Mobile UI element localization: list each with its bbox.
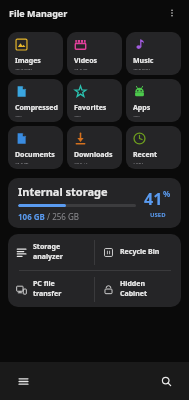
staticText: Recycle Bin [120, 247, 160, 257]
staticText: Downloads [74, 150, 113, 160]
button[interactable]: Hidden [95, 271, 181, 307]
staticText: analyzer [33, 252, 63, 262]
button[interactable]: Downloads [67, 126, 122, 169]
button[interactable]: PC file [8, 271, 94, 307]
staticText: (45) [133, 161, 144, 164]
staticText: (113) [74, 67, 88, 70]
staticText: (5327) [15, 67, 33, 70]
button[interactable]: Storage [8, 234, 94, 270]
staticText: Storage [33, 242, 61, 252]
button[interactable]: Recycle Bin [95, 234, 181, 270]
button[interactable]: Search [155, 370, 177, 392]
staticText: transfer [33, 289, 62, 299]
staticText: Videos [74, 56, 98, 66]
staticText: 106 GB [18, 211, 45, 222]
staticText: / 256 GB [45, 211, 79, 222]
button[interactable]: Internal storage [8, 178, 181, 228]
staticText: Internal storage [18, 184, 108, 199]
staticText: Documents [15, 150, 55, 160]
button[interactable]: More options [164, 5, 180, 21]
staticText: (0) [15, 114, 23, 117]
staticText: Apps [133, 103, 151, 113]
staticText: Hidden [120, 279, 146, 289]
staticText: Cabinet [120, 289, 147, 299]
button[interactable]: Images [8, 32, 63, 75]
staticText: Music [133, 56, 154, 66]
staticText: (5590) [133, 67, 151, 70]
staticText: PC file [33, 279, 55, 289]
staticText: (117) [15, 161, 29, 164]
staticText: File Manager [9, 7, 68, 19]
button[interactable]: Recent [126, 126, 181, 169]
button[interactable]: Menu [12, 370, 34, 392]
staticText: % [163, 188, 171, 199]
staticText: USED [150, 211, 166, 219]
staticText: (0) [74, 114, 82, 117]
staticText: (36+) [74, 161, 88, 164]
staticText: Favorites [74, 103, 107, 113]
button[interactable]: Videos [67, 32, 122, 75]
button[interactable]: Music [126, 32, 181, 75]
button[interactable]: Compressed [8, 79, 63, 122]
staticText: (0) [133, 114, 141, 117]
button[interactable]: Documents [8, 126, 63, 169]
button[interactable]: Apps [126, 79, 181, 122]
staticText: Recent [133, 150, 158, 160]
staticText: Compressed [15, 103, 58, 113]
staticText: Images [15, 56, 41, 66]
button[interactable]: Favorites [67, 79, 122, 122]
staticText: 41 [144, 188, 163, 210]
